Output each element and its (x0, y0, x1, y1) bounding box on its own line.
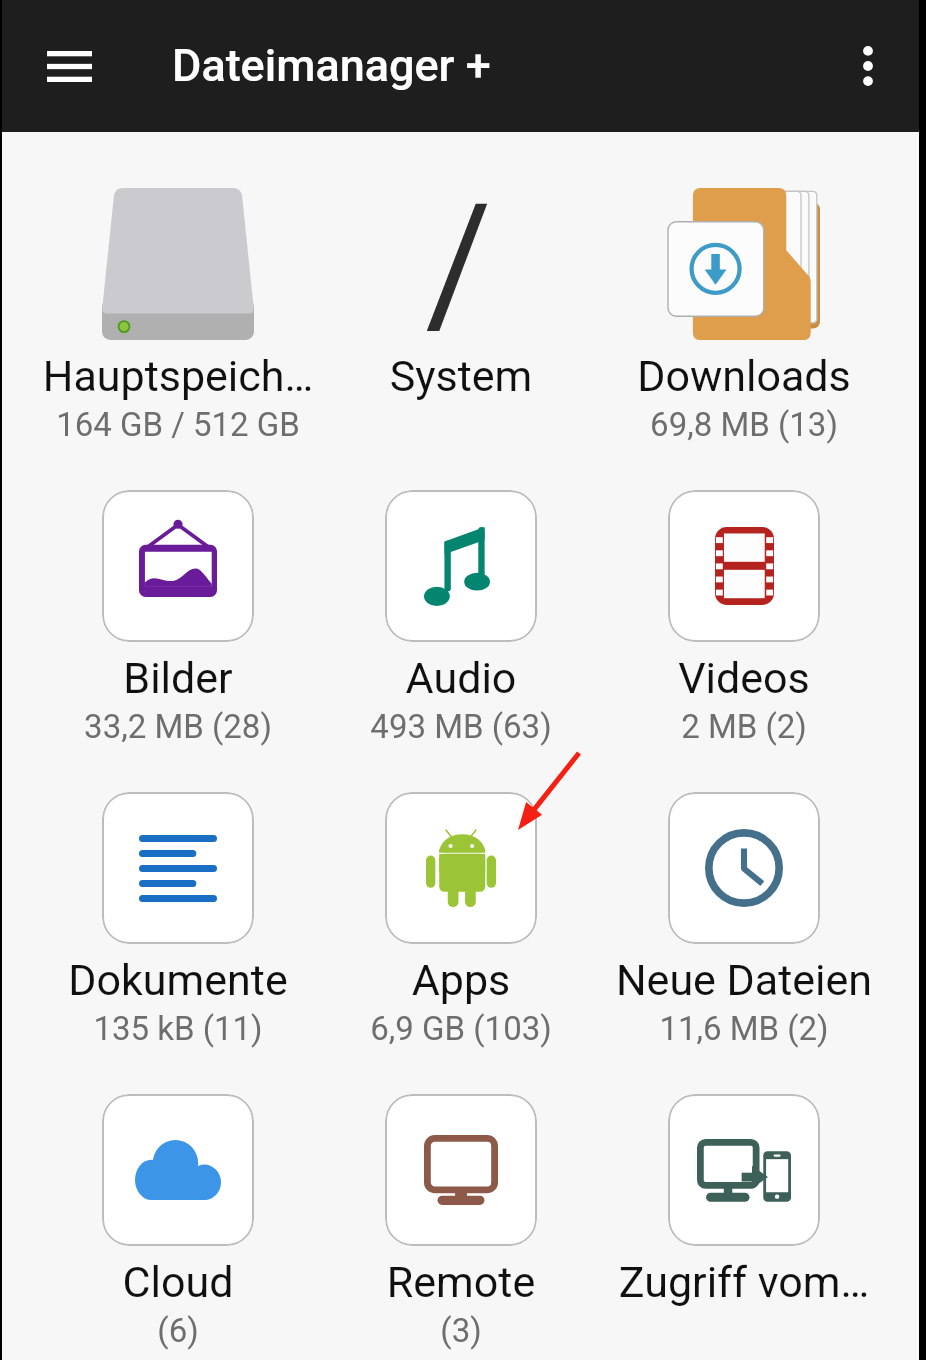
staticText: Cloud (0, 1257, 378, 1307)
staticText: Audio (261, 653, 661, 703)
staticText: 493 MB (63) (261, 707, 661, 746)
button[interactable]: More options (832, 30, 904, 102)
staticText: 135 kB (11) (0, 1009, 378, 1048)
staticText: Downloads (544, 351, 926, 401)
button[interactable]: Dokumente (36, 792, 319, 1048)
staticText: 2 MB (2) (544, 707, 926, 746)
staticText: (6) (0, 1311, 378, 1350)
button[interactable]: Videos (602, 490, 885, 746)
staticText: Dateimanager + (172, 39, 491, 92)
staticText: Neue Dateien (544, 955, 926, 1005)
staticText: (3) (261, 1311, 661, 1350)
staticText: Bilder (0, 653, 378, 703)
staticText: Apps (261, 955, 661, 1005)
staticText: Videos (544, 653, 926, 703)
button[interactable]: Hauptspeich… (36, 188, 319, 444)
button[interactable]: Cloud (36, 1094, 319, 1350)
staticText: Hauptspeich… (0, 351, 378, 401)
button[interactable]: Menu (33, 30, 105, 102)
button[interactable]: Remote (319, 1094, 602, 1350)
button[interactable]: Audio (319, 490, 602, 746)
staticText: Remote (261, 1257, 661, 1307)
button[interactable]: System (319, 188, 602, 401)
staticText: Dokumente (0, 955, 378, 1005)
staticText: 6,9 GB (103) (261, 1009, 661, 1048)
staticText: Zugriff vom… (544, 1257, 926, 1307)
staticText: System (261, 351, 661, 401)
staticText: 11,6 MB (2) (544, 1009, 926, 1048)
button[interactable]: Zugriff vom… (602, 1094, 885, 1307)
button[interactable]: Bilder (36, 490, 319, 746)
button[interactable]: Neue Dateien (602, 792, 885, 1048)
button[interactable]: Apps (319, 792, 602, 1048)
staticText: 69,8 MB (13) (544, 405, 926, 444)
staticText: 164 GB / 512 GB (0, 405, 378, 444)
button[interactable]: Downloads (602, 188, 885, 444)
staticText: 33,2 MB (28) (0, 707, 378, 746)
